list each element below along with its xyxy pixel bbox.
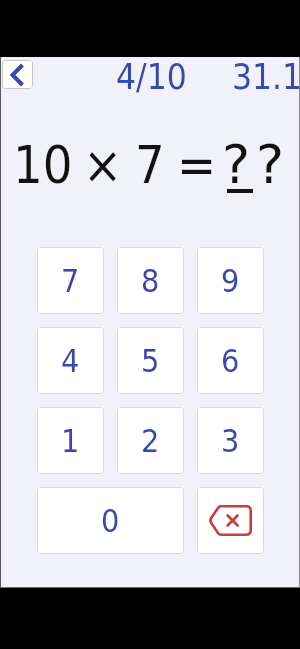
button[interactable]: 1 bbox=[37, 407, 104, 474]
staticText: 5 bbox=[141, 342, 160, 379]
button[interactable] bbox=[197, 487, 264, 554]
staticText: 2 bbox=[141, 422, 160, 459]
button[interactable]: 3 bbox=[197, 407, 264, 474]
staticText: 4/10 bbox=[116, 57, 187, 98]
staticText: 9 bbox=[221, 262, 240, 299]
staticText: × bbox=[83, 135, 123, 196]
staticText: 31.1 bbox=[232, 57, 300, 98]
button[interactable]: 7 bbox=[37, 247, 104, 314]
staticText: 10 bbox=[13, 135, 73, 196]
staticText: 3 bbox=[221, 422, 240, 459]
staticText: 8 bbox=[141, 262, 160, 299]
staticText: 7 bbox=[135, 135, 165, 196]
staticText: ? bbox=[222, 134, 251, 196]
button[interactable]: 5 bbox=[117, 327, 184, 394]
staticText: 0 bbox=[101, 502, 120, 539]
button[interactable]: 9 bbox=[197, 247, 264, 314]
staticText: 1 bbox=[61, 422, 80, 459]
staticText: ? bbox=[256, 134, 285, 196]
button[interactable]: 0 bbox=[37, 487, 184, 554]
button[interactable]: 2 bbox=[117, 407, 184, 474]
staticText: 6 bbox=[221, 342, 240, 379]
button[interactable] bbox=[2, 60, 33, 89]
button[interactable]: 6 bbox=[197, 327, 264, 394]
staticText: 4 bbox=[61, 342, 80, 379]
button[interactable]: 8 bbox=[117, 247, 184, 314]
staticText: = bbox=[177, 135, 217, 196]
button[interactable]: 4 bbox=[37, 327, 104, 394]
staticText: 7 bbox=[61, 262, 80, 299]
